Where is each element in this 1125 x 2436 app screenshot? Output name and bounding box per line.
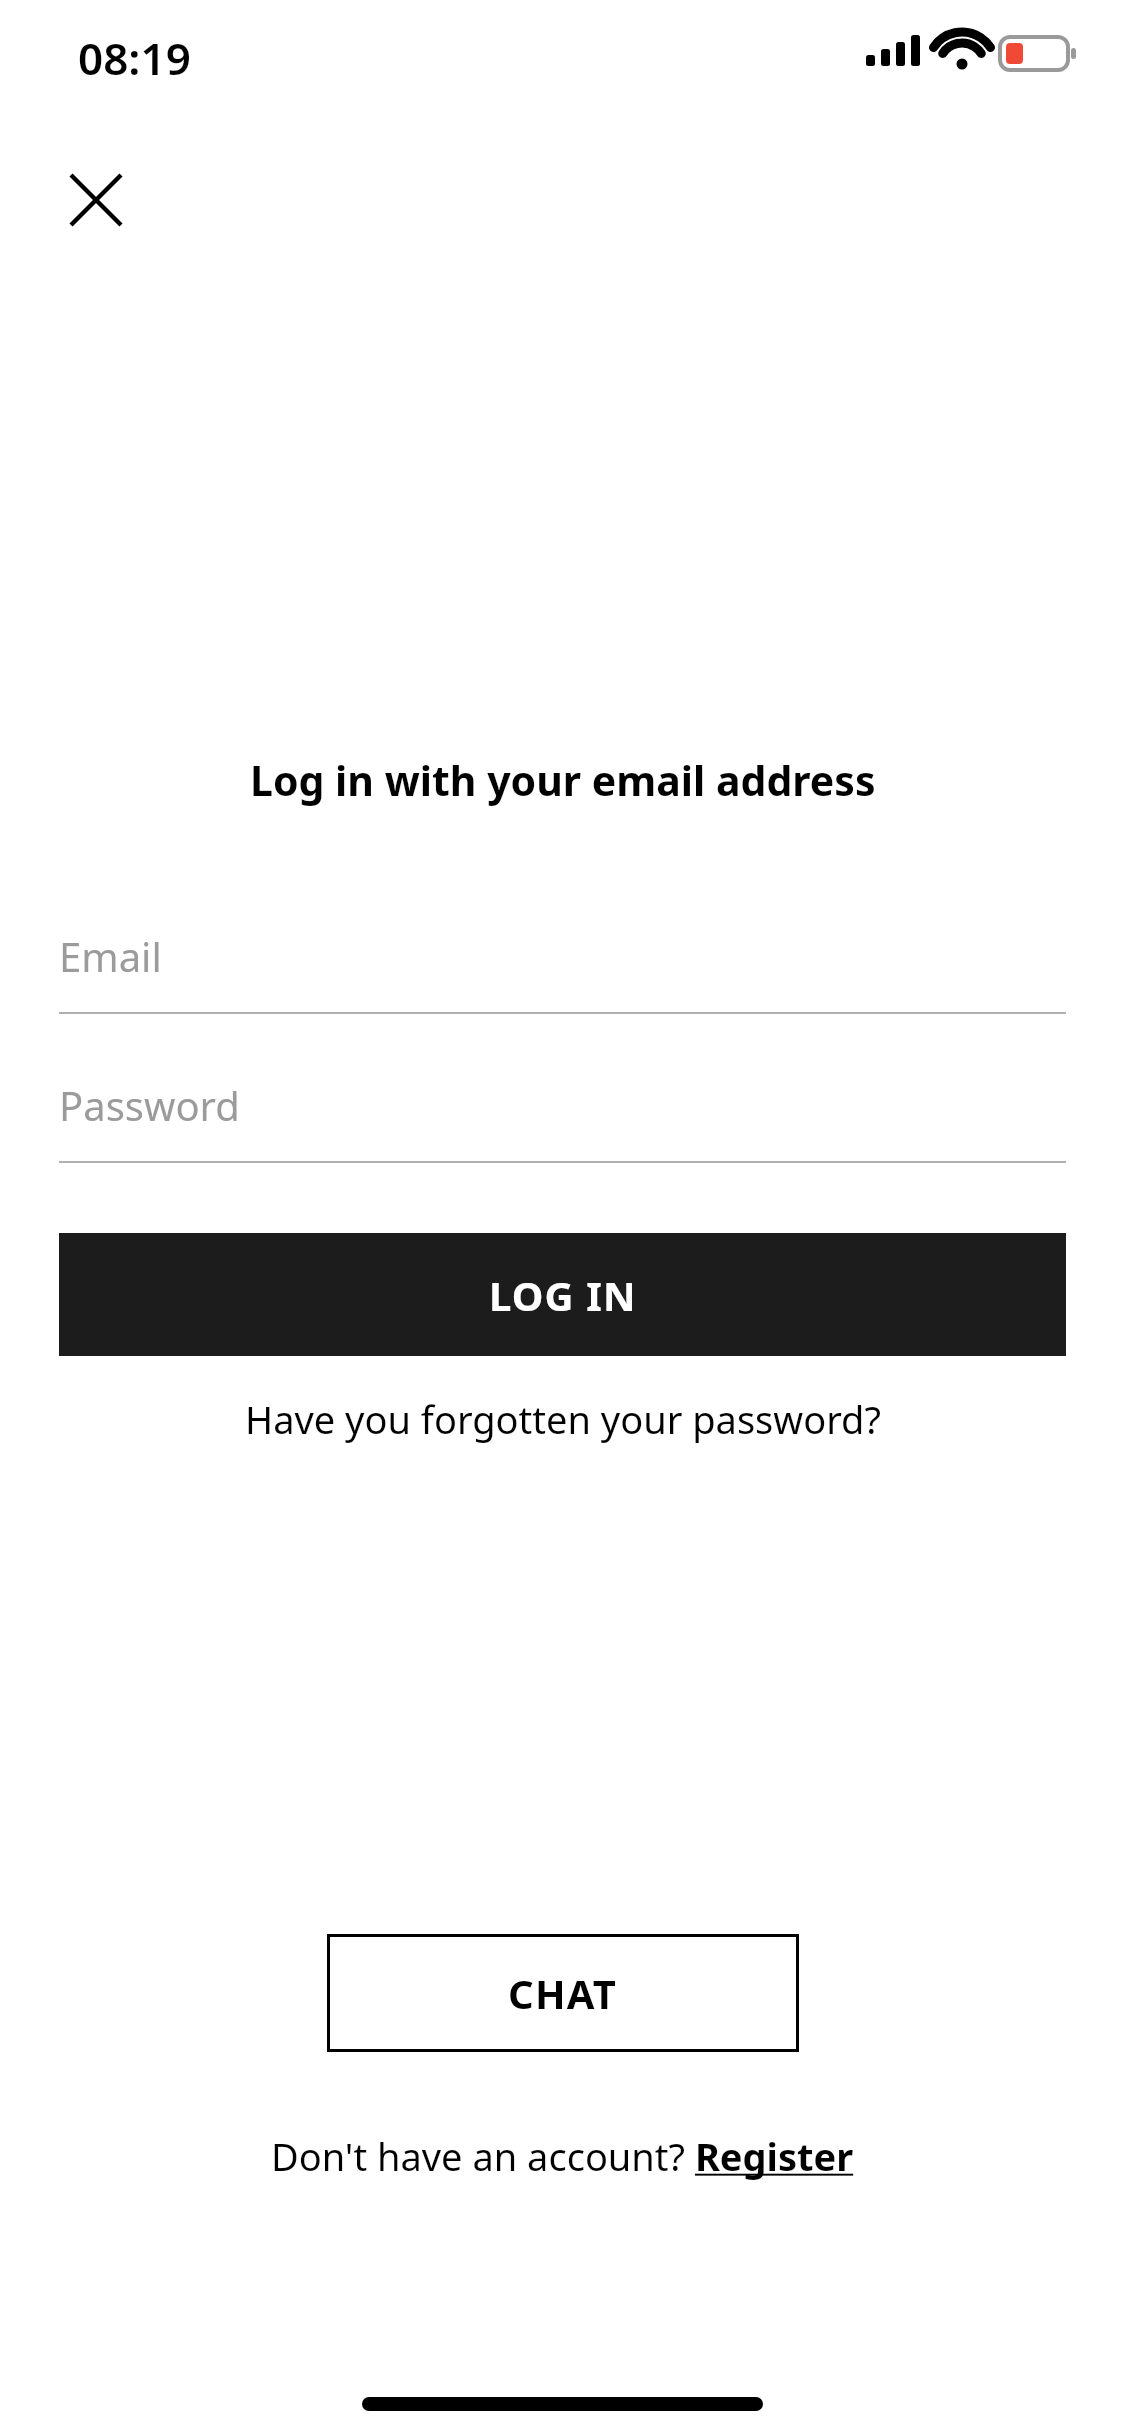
- button[interactable]: Email: [59, 920, 1066, 1014]
- button[interactable]: CHAT: [327, 1934, 799, 2052]
- staticText: Don't have an account? Register: [271, 2130, 854, 2182]
- staticText: CHAT: [508, 1966, 618, 2020]
- button[interactable]: Have you forgotten your password?: [0, 1393, 1125, 1445]
- staticText: Have you forgotten your password?: [245, 1393, 881, 1445]
- staticText: Password: [59, 1078, 240, 1132]
- staticText: Email: [59, 929, 162, 983]
- staticText: LOG IN: [489, 1268, 637, 1322]
- button[interactable]: Don't have an account? Register: [0, 2130, 1125, 2182]
- button[interactable]: Password: [59, 1069, 1066, 1163]
- button[interactable]: LOG IN: [59, 1233, 1066, 1356]
- staticText: 08:19: [78, 28, 191, 88]
- staticText: Log in with your email address: [250, 752, 876, 808]
- button[interactable]: Close: [46, 150, 146, 250]
